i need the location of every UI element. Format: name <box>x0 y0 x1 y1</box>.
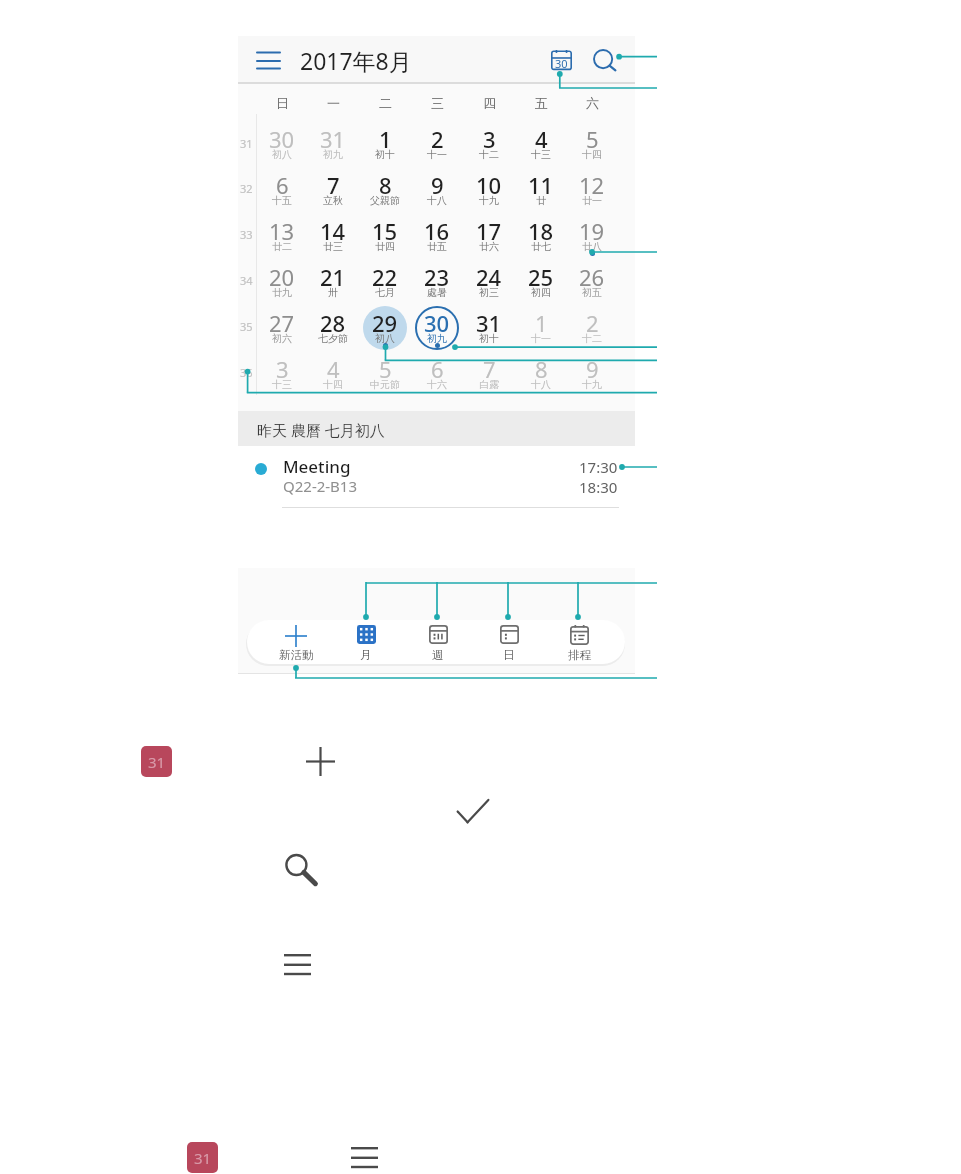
staticText: 31 <box>194 1148 212 1168</box>
button[interactable]: 22 <box>359 255 411 301</box>
button[interactable]: 10 <box>463 163 515 209</box>
button[interactable]: Menu <box>284 954 311 976</box>
staticText: 3 <box>483 124 496 154</box>
button[interactable]: Search <box>285 853 317 885</box>
button[interactable]: Calendar app <box>187 1142 218 1173</box>
staticText: 13 <box>269 216 295 246</box>
staticText: 十六 <box>427 378 447 391</box>
staticText: 10 <box>476 170 502 200</box>
staticText: 初十 <box>479 332 499 345</box>
button[interactable]: 5 <box>566 117 618 163</box>
staticText: 十三 <box>531 148 551 161</box>
button[interactable]: 13 <box>256 209 308 255</box>
button[interactable]: Menu <box>351 1147 378 1169</box>
button[interactable]: 14 <box>307 209 359 255</box>
button[interactable]: 31 <box>307 117 359 163</box>
button[interactable]: Search <box>579 36 625 84</box>
button[interactable]: 30 <box>411 301 463 347</box>
button[interactable]: 28 <box>307 301 359 347</box>
staticText: 16 <box>424 216 450 246</box>
button[interactable]: Meeting <box>238 446 635 508</box>
staticText: 1 <box>535 308 548 338</box>
staticText: 十二 <box>479 148 499 161</box>
staticText: 十四 <box>323 378 343 391</box>
button[interactable]: 26 <box>566 255 618 301</box>
button[interactable]: 4 <box>307 347 359 393</box>
staticText: 31 <box>240 136 253 151</box>
button[interactable]: 20 <box>256 255 308 301</box>
button[interactable]: 12 <box>566 163 618 209</box>
button[interactable]: Done <box>457 798 489 830</box>
staticText: 6 <box>431 354 444 384</box>
button[interactable]: 7 <box>307 163 359 209</box>
staticText: 初九 <box>427 332 447 345</box>
button[interactable]: 4 <box>515 117 567 163</box>
button[interactable]: 31 <box>463 301 515 347</box>
staticText: 十八 <box>427 194 447 207</box>
button[interactable]: 9 <box>411 163 463 209</box>
staticText: 十一 <box>531 332 551 345</box>
button[interactable]: 日 <box>476 620 542 664</box>
button[interactable]: 21 <box>307 255 359 301</box>
staticText: 30 <box>555 56 568 71</box>
staticText: 十九 <box>582 378 602 391</box>
staticText: 父親節 <box>370 194 400 207</box>
staticText: Q22-2-B13 <box>283 476 358 496</box>
staticText: 17 <box>476 216 502 246</box>
button[interactable]: 24 <box>463 255 515 301</box>
button[interactable]: 11 <box>515 163 567 209</box>
button[interactable]: 7 <box>463 347 515 393</box>
button[interactable]: 3 <box>463 117 515 163</box>
staticText: 處暑 <box>427 286 447 299</box>
button[interactable]: 6 <box>256 163 308 209</box>
staticText: 一 <box>327 95 340 111</box>
button[interactable]: 1 <box>515 301 567 347</box>
button[interactable]: 2 <box>411 117 463 163</box>
staticText: 5 <box>586 124 599 154</box>
button[interactable]: Add <box>306 747 335 776</box>
button[interactable]: 新活動 <box>263 620 329 664</box>
button[interactable]: 8 <box>515 347 567 393</box>
button[interactable]: 23 <box>411 255 463 301</box>
staticText: 十四 <box>582 148 602 161</box>
button[interactable]: 29 <box>359 301 411 347</box>
staticText: 6 <box>276 170 289 200</box>
staticText: 2017年8月 <box>300 45 412 76</box>
staticText: 廿五 <box>427 240 447 253</box>
button[interactable]: 16 <box>411 209 463 255</box>
staticText: 15 <box>372 216 398 246</box>
button[interactable]: 週 <box>405 620 471 664</box>
button[interactable]: 3 <box>256 347 308 393</box>
button[interactable]: 9 <box>566 347 618 393</box>
button[interactable]: 27 <box>256 301 308 347</box>
staticText: 初十 <box>375 148 395 161</box>
button[interactable]: 月 <box>333 620 399 664</box>
staticText: 廿九 <box>272 286 292 299</box>
button[interactable]: Go to today <box>537 36 585 84</box>
staticText: 六 <box>586 95 599 111</box>
button[interactable]: 18 <box>515 209 567 255</box>
button[interactable]: 17 <box>463 209 515 255</box>
staticText: 19 <box>579 216 605 246</box>
staticText: 17:30 <box>579 457 618 477</box>
button[interactable]: 5 <box>359 347 411 393</box>
button[interactable]: 25 <box>515 255 567 301</box>
button[interactable]: 15 <box>359 209 411 255</box>
staticText: 十一 <box>427 148 447 161</box>
button[interactable]: 8 <box>359 163 411 209</box>
button[interactable]: Menu <box>250 42 286 78</box>
staticText: 2 <box>586 308 599 338</box>
button[interactable]: 排程 <box>546 620 612 664</box>
staticText: 排程 <box>568 648 591 662</box>
staticText: 28 <box>320 308 346 338</box>
button[interactable]: Calendar app <box>141 746 172 777</box>
staticText: 廿七 <box>531 240 551 253</box>
staticText: 十二 <box>582 332 602 345</box>
button[interactable]: 1 <box>359 117 411 163</box>
button[interactable]: 19 <box>566 209 618 255</box>
button[interactable]: 6 <box>411 347 463 393</box>
button[interactable]: 30 <box>256 117 308 163</box>
staticText: 27 <box>269 308 295 338</box>
staticText: 11 <box>528 170 554 200</box>
button[interactable]: 2 <box>566 301 618 347</box>
